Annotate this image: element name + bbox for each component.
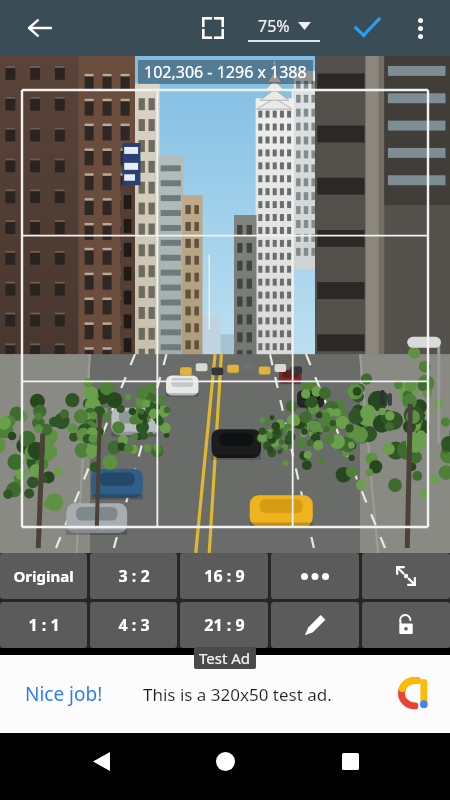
- button[interactable]: 21 : 9: [180, 602, 268, 648]
- staticText: This is a 320x50 test ad.: [143, 683, 332, 706]
- button[interactable]: 4 : 3: [90, 602, 177, 648]
- button[interactable]: 16 : 9: [180, 553, 268, 599]
- staticText: 1 : 1: [28, 614, 60, 636]
- staticText: 16 : 9: [204, 565, 245, 587]
- staticText: Nice job!: [25, 681, 103, 707]
- other: AdMob: [394, 673, 436, 715]
- button[interactable]: Fit screen: [192, 7, 234, 49]
- staticText: 102,306 - 1296 x 1388: [144, 61, 307, 83]
- staticText: Original: [13, 566, 74, 586]
- button[interactable]: Back: [18, 6, 62, 50]
- staticText: 4 : 3: [118, 614, 150, 636]
- staticText: 75%: [258, 15, 290, 37]
- button[interactable]: 3 : 2: [90, 553, 177, 599]
- button[interactable]: More ratios: [271, 553, 359, 599]
- button[interactable]: Home: [201, 737, 249, 785]
- button[interactable]: More options: [398, 6, 442, 50]
- staticText: 21 : 9: [204, 614, 245, 636]
- button[interactable]: 75%: [248, 7, 320, 49]
- button[interactable]: Back: [77, 737, 125, 785]
- button[interactable]: Recents: [326, 737, 374, 785]
- button[interactable]: Apply: [345, 6, 389, 50]
- button[interactable]: 1 : 1: [0, 602, 87, 648]
- button[interactable]: Resize: [362, 553, 450, 599]
- staticText: 3 : 2: [118, 565, 150, 587]
- staticText: Test Ad: [199, 648, 251, 668]
- button[interactable]: Unlock aspect ratio: [362, 602, 450, 648]
- button[interactable]: Original: [0, 553, 87, 599]
- button[interactable]: Nice job!: [0, 655, 450, 733]
- button[interactable]: Edit: [271, 602, 359, 648]
